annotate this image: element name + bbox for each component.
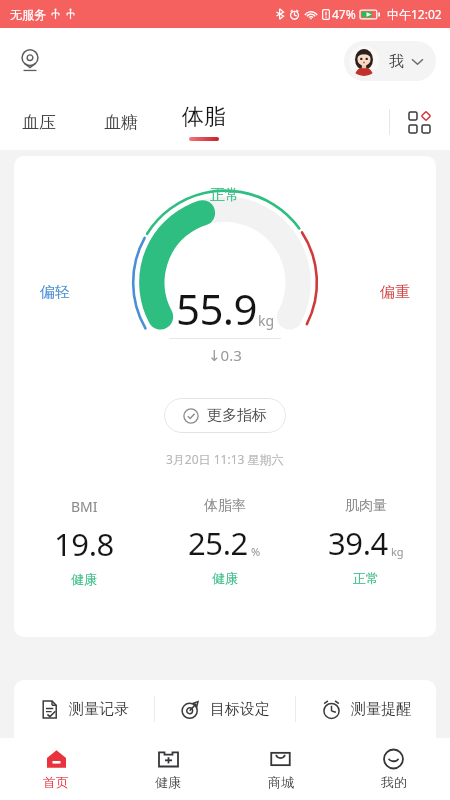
button[interactable]: 我 [344, 41, 436, 81]
button[interactable]: BMI [14, 497, 154, 587]
staticText: BMI [71, 497, 98, 516]
staticText: 中午12:02 [387, 6, 442, 22]
staticText: 目标设定 [210, 700, 270, 719]
staticText: kg [391, 544, 404, 559]
staticText: 健康 [71, 571, 97, 587]
staticText: 健康 [212, 570, 238, 586]
staticText: 47% [332, 6, 356, 22]
staticText: 我的 [381, 774, 407, 790]
button[interactable]: 首页 [0, 738, 112, 800]
staticText: 19.8 [54, 523, 114, 565]
staticText: 正常 [210, 186, 240, 205]
staticText: 我 [389, 52, 404, 71]
button[interactable]: All functions [402, 105, 436, 139]
staticText: 体脂率 [204, 497, 246, 515]
button[interactable]: 测量记录 [14, 680, 154, 738]
staticText: 55.9 [176, 280, 257, 337]
staticText: 正常 [353, 570, 379, 586]
button[interactable]: 商城 [224, 738, 337, 800]
staticText: 首页 [43, 774, 69, 790]
staticText: 血压 [22, 112, 56, 133]
staticText: 偏轻 [40, 283, 70, 302]
staticText: 血糖 [104, 112, 138, 133]
button[interactable]: 肌肉量 [295, 497, 436, 586]
staticText: 体脂 [182, 103, 226, 131]
staticText: 偏重 [380, 283, 410, 302]
button[interactable]: 目标设定 [155, 680, 295, 738]
staticText: 肌肉量 [345, 497, 387, 515]
staticText: 25.2 [188, 522, 248, 564]
button[interactable]: 更多指标 [164, 398, 286, 433]
button[interactable]: 血糖 [100, 112, 142, 133]
staticText: 测量记录 [69, 700, 129, 719]
staticText: 更多指标 [207, 406, 267, 425]
button[interactable]: 血压 [18, 112, 60, 133]
staticText: 健康 [155, 774, 181, 790]
button[interactable]: Location [10, 41, 50, 81]
staticText: kg [258, 311, 275, 330]
staticText: % [251, 544, 261, 559]
button[interactable]: 测量提醒 [296, 680, 436, 738]
button[interactable]: 我的 [337, 738, 450, 800]
staticText: ↓0.3 [208, 345, 242, 365]
button[interactable]: 体脂率 [154, 497, 295, 586]
staticText: 39.4 [328, 522, 388, 564]
button[interactable]: 体脂 [178, 103, 230, 141]
staticText: 3月20日 11:13 星期六 [166, 451, 284, 467]
staticText: 无服务 [10, 7, 46, 22]
staticText: 测量提醒 [351, 700, 411, 719]
staticText: 商城 [268, 774, 294, 790]
button[interactable]: 健康 [112, 738, 224, 800]
